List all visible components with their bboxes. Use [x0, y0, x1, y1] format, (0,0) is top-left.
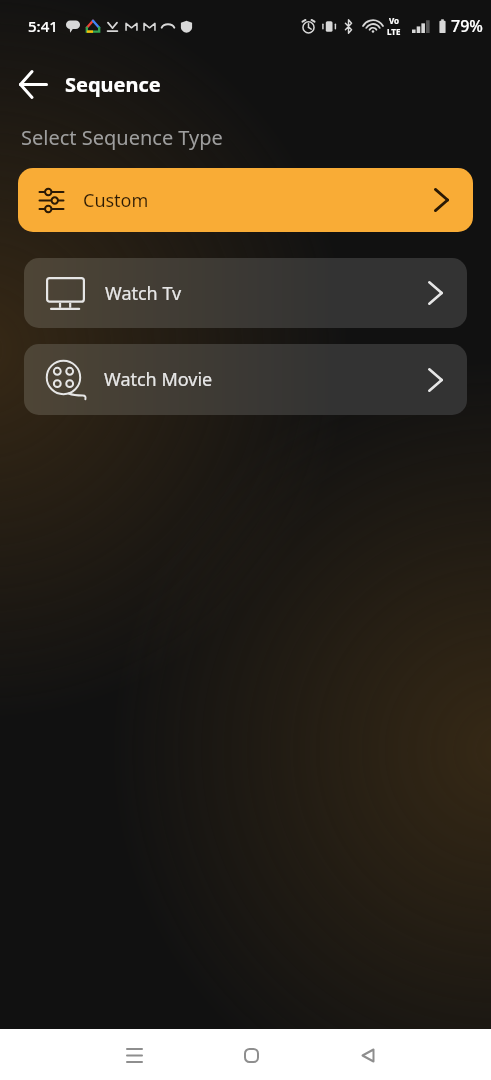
button[interactable]: Recent apps: [112, 1033, 156, 1077]
staticText: Sequence: [65, 71, 161, 98]
staticText: 5:41: [28, 16, 58, 36]
staticText: Custom: [83, 188, 149, 213]
button[interactable]: Home: [229, 1033, 273, 1077]
button[interactable]: Back: [346, 1033, 390, 1077]
staticText: 79%: [451, 15, 483, 37]
staticText: LTE: [387, 26, 401, 37]
button[interactable]: Watch Movie: [24, 344, 467, 415]
button[interactable]: Back: [11, 62, 55, 106]
staticText: Select Sequence Type: [21, 124, 223, 151]
button[interactable]: Watch Tv: [24, 258, 467, 328]
button[interactable]: Custom: [18, 168, 473, 232]
staticText: Watch Movie: [104, 367, 213, 392]
staticText: Watch Tv: [105, 281, 182, 306]
staticText: Vo: [389, 15, 400, 26]
